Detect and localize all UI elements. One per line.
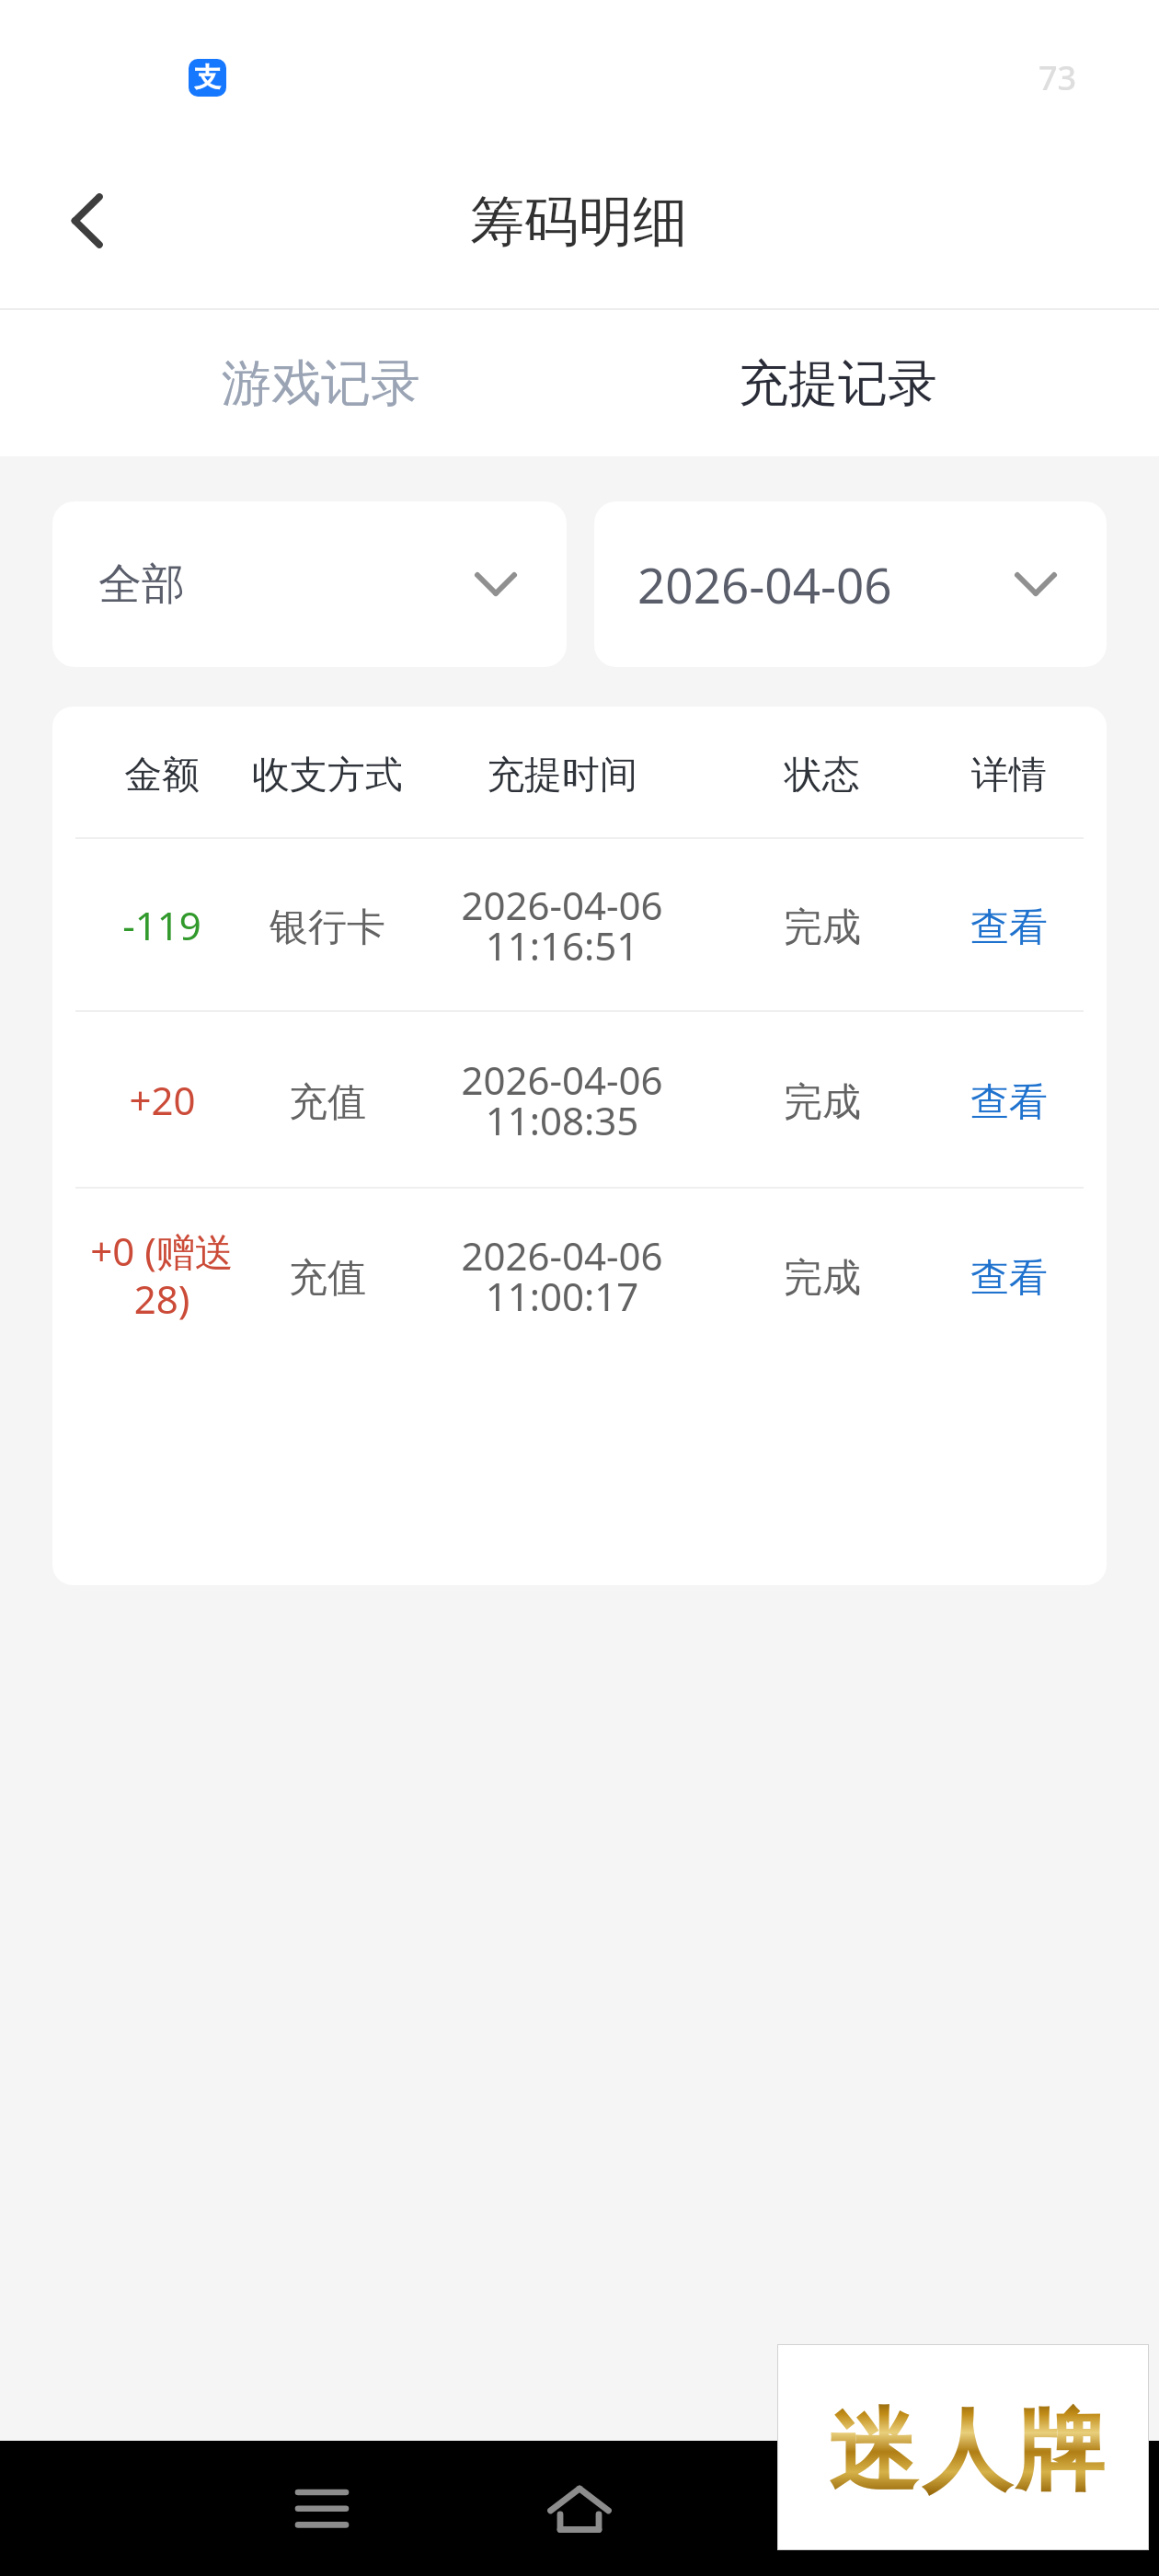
staticText: +0 (赠送 28) — [75, 1225, 248, 1326]
staticText: 银行卡 — [270, 903, 385, 952]
staticText: 2026-04-06 11:08:35 — [461, 1053, 663, 1146]
staticText: 充提记录 — [739, 352, 937, 415]
staticText: 查看 — [970, 1254, 1048, 1303]
button[interactable]: 查看 — [926, 1014, 1092, 1190]
button[interactable]: +0 (赠送 28) — [52, 1188, 1107, 1363]
staticText: 状态 — [785, 752, 860, 799]
staticText: 游戏记录 — [222, 352, 420, 415]
staticText: 完成 — [784, 1078, 861, 1127]
button[interactable]: 游戏记录 — [63, 309, 579, 456]
staticText: 金额 — [124, 752, 200, 799]
staticText: 2026-04-06 — [637, 551, 892, 617]
staticText: 全部 — [98, 558, 185, 612]
staticText: 筹码明细 — [470, 188, 687, 256]
staticText: 2026-04-06 11:00:17 — [461, 1229, 663, 1322]
staticText: 详情 — [971, 752, 1047, 799]
button[interactable]: 全部 — [52, 501, 567, 667]
staticText: -119 — [122, 899, 201, 951]
staticText: 完成 — [784, 903, 861, 952]
staticText: 73 — [1039, 55, 1077, 100]
staticText: 充提时间 — [487, 752, 637, 799]
staticText: 2026-04-06 11:16:51 — [461, 879, 663, 972]
button[interactable]: Home — [504, 2441, 651, 2576]
staticText: 充值 — [289, 1078, 366, 1127]
button[interactable]: Back — [38, 166, 139, 267]
staticText: 收支方式 — [252, 752, 403, 799]
button[interactable]: -119 — [52, 838, 1107, 1011]
button[interactable]: 查看 — [926, 841, 1092, 1014]
button[interactable]: Recent apps — [248, 2441, 396, 2576]
button[interactable]: 2026-04-06 — [594, 501, 1107, 667]
staticText: 查看 — [970, 1078, 1048, 1127]
staticText: 支 — [194, 61, 221, 95]
staticText: 迷人牌 — [826, 2396, 1107, 2508]
button[interactable]: 充提记录 — [579, 309, 1096, 456]
staticText: +20 — [129, 1074, 196, 1126]
staticText: 完成 — [784, 1254, 861, 1303]
button[interactable]: 查看 — [926, 1190, 1092, 1365]
button[interactable]: +20 — [52, 1011, 1107, 1188]
staticText: 查看 — [970, 903, 1048, 952]
staticText: 充值 — [289, 1254, 366, 1303]
